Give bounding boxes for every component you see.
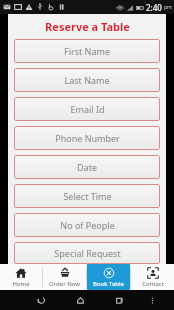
staticText: Special Request	[54, 247, 121, 259]
staticText: Home	[12, 280, 30, 288]
staticText: Contact	[142, 280, 164, 288]
button[interactable]: No of People	[14, 213, 160, 237]
staticText: Date	[77, 161, 97, 173]
staticText: Phone Number	[55, 132, 120, 144]
button[interactable]: Order Now	[43, 264, 86, 290]
button[interactable]: First Name	[14, 39, 160, 63]
staticText: pm	[164, 4, 172, 11]
staticText: Select Time	[63, 190, 112, 202]
button[interactable]: Phone Number	[14, 126, 160, 150]
button[interactable]: Home	[61, 290, 100, 310]
button[interactable]: Recent apps	[100, 290, 139, 310]
button[interactable]: Email Id	[14, 97, 160, 121]
staticText: No of People	[60, 219, 115, 231]
staticText: Order Now	[49, 280, 80, 288]
button[interactable]: Book Table	[87, 264, 130, 290]
button[interactable]: Date	[14, 155, 160, 179]
button[interactable]: Home	[0, 264, 42, 290]
staticText: Email Id	[70, 103, 105, 115]
staticText: Last Name	[64, 74, 110, 86]
button[interactable]: Select Time	[14, 184, 160, 208]
button[interactable]: Special Request	[14, 242, 160, 264]
staticText: 2:40	[146, 2, 162, 13]
button[interactable]: Back	[22, 290, 61, 310]
button[interactable]: More options	[139, 290, 166, 310]
staticText: Reserve a Table	[45, 19, 130, 34]
button[interactable]: Last Name	[14, 68, 160, 92]
staticText: First Name	[64, 45, 110, 57]
button[interactable]: Contact	[131, 264, 174, 290]
staticText: Book Table	[93, 280, 124, 288]
